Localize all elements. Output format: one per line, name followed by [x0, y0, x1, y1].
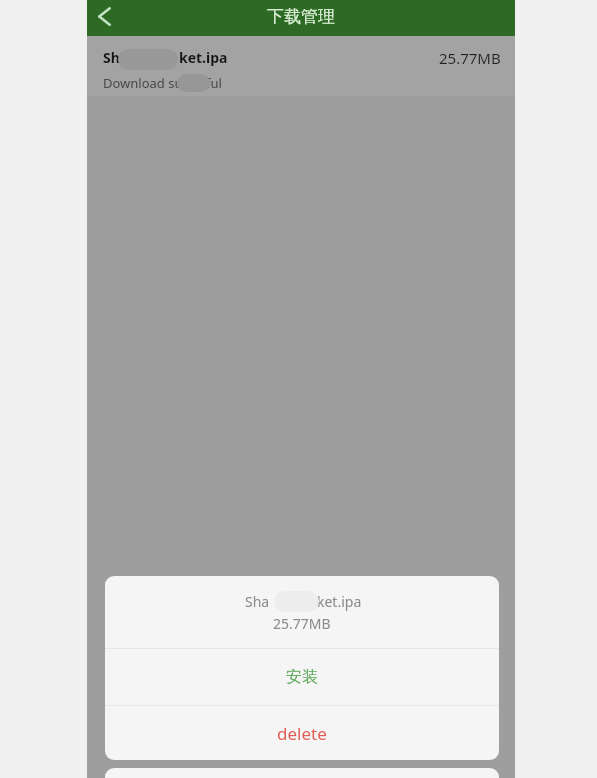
- staticText: 25.77MB: [273, 614, 331, 633]
- staticText: Download su: [103, 74, 183, 92]
- staticText: delete: [277, 722, 327, 745]
- button[interactable]: delete: [105, 706, 499, 760]
- button[interactable]: Back: [87, 0, 121, 36]
- staticText: Sha: [245, 592, 270, 611]
- staticText: ful: [206, 74, 222, 92]
- button[interactable]: 安装: [105, 649, 499, 705]
- staticText: Sh: [103, 48, 120, 67]
- staticText: ket.ipa: [317, 592, 362, 611]
- button[interactable]: 取消: [105, 768, 499, 778]
- staticText: 安装: [286, 667, 318, 687]
- staticText: 下载管理: [267, 6, 335, 27]
- staticText: ket.ipa: [179, 48, 228, 67]
- staticText: 25.77MB: [439, 48, 501, 68]
- button[interactable]: Sh: [87, 36, 515, 96]
